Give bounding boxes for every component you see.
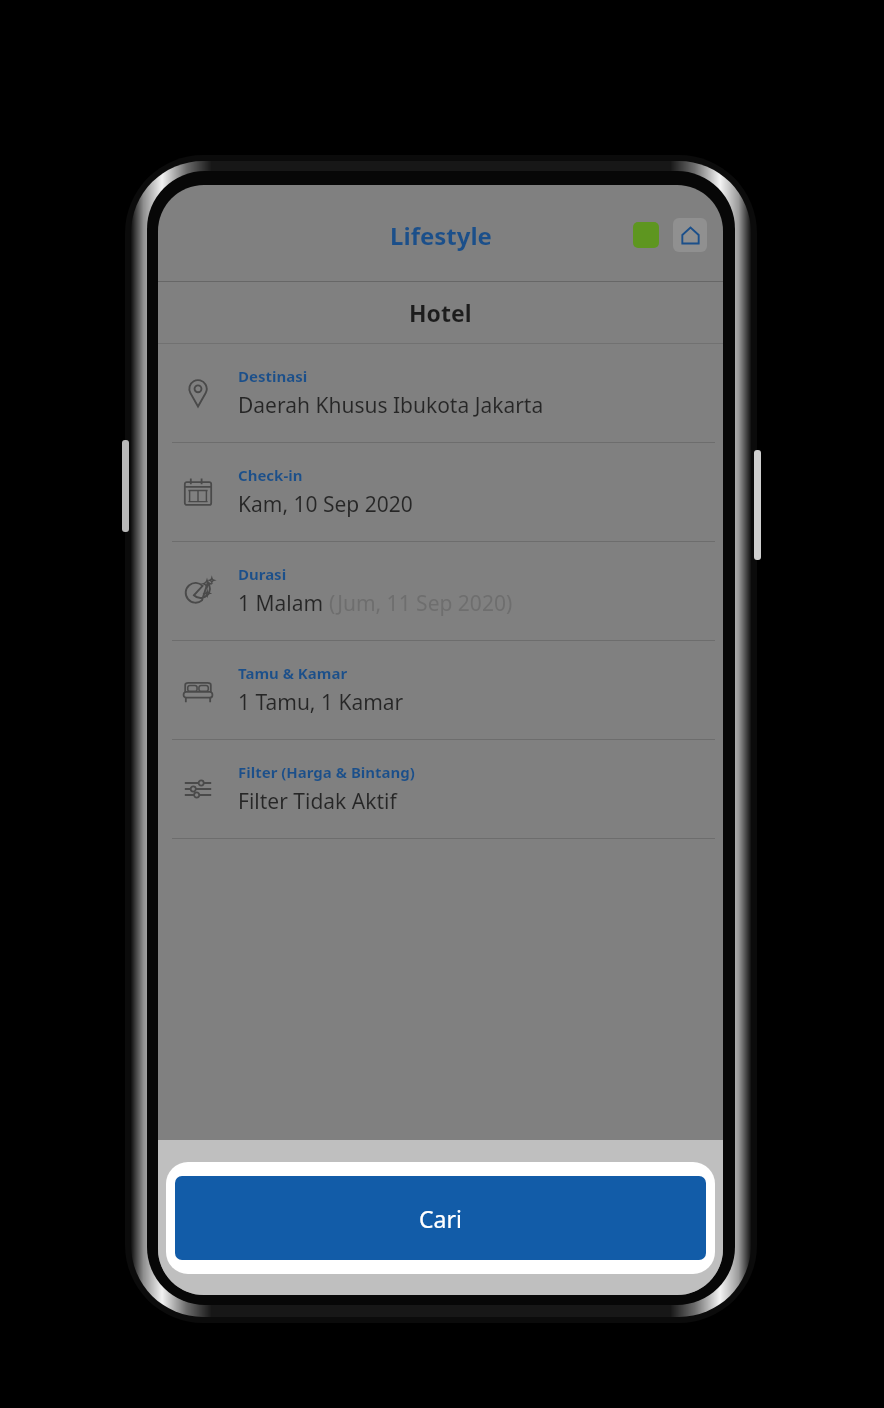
staticText: Daerah Khusus Ibukota Jakarta <box>238 391 544 420</box>
button[interactable]: Home <box>673 218 707 252</box>
button[interactable]: Destinasi <box>158 344 723 442</box>
staticText: (Jum, 11 Sep 2020) <box>329 589 513 618</box>
staticText: Destinasi <box>238 366 308 386</box>
staticText: Kam, 10 Sep 2020 <box>238 490 413 519</box>
staticText: Durasi <box>238 564 287 584</box>
button[interactable]: Status <box>633 222 659 248</box>
staticText: Cari <box>419 1203 462 1234</box>
staticText: 1 Malam <box>238 589 329 618</box>
staticText: Tamu & Kamar <box>238 663 348 683</box>
button[interactable]: Filter (Harga & Bintang) <box>158 740 723 838</box>
button[interactable]: Cari <box>175 1176 706 1260</box>
staticText: Hotel <box>409 297 472 328</box>
staticText: Filter (Harga & Bintang) <box>238 762 415 782</box>
button[interactable]: Check-in <box>158 443 723 541</box>
staticText: 1 Tamu, 1 Kamar <box>238 688 404 717</box>
staticText: Check-in <box>238 465 303 485</box>
staticText: Lifestyle <box>390 219 492 252</box>
button[interactable]: Tamu & Kamar <box>158 641 723 739</box>
staticText: Filter Tidak Aktif <box>238 787 397 816</box>
button[interactable]: Durasi <box>158 542 723 640</box>
